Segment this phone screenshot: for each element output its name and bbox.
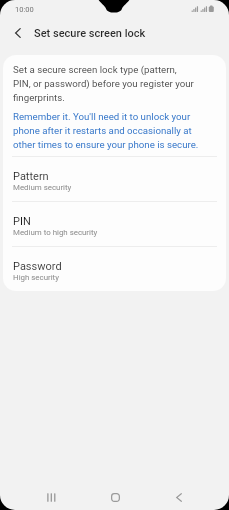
staticText: 10:00 bbox=[15, 5, 34, 14]
button[interactable]: Pattern bbox=[3, 157, 226, 201]
staticText: PIN bbox=[13, 215, 31, 228]
button[interactable]: Recent apps bbox=[37, 483, 65, 510]
staticText: Set secure screen lock bbox=[34, 27, 146, 40]
button[interactable]: Home bbox=[101, 483, 129, 510]
staticText: Pattern bbox=[13, 170, 49, 183]
button[interactable]: Back bbox=[165, 483, 193, 510]
staticText: Remember it. You'll need it to unlock yo… bbox=[13, 111, 199, 150]
staticText: Medium to high security bbox=[13, 228, 98, 237]
staticText: Set a secure screen lock type (pattern, … bbox=[13, 64, 194, 103]
button[interactable]: Navigate up bbox=[7, 22, 28, 43]
staticText: High security bbox=[13, 273, 59, 282]
button[interactable]: Password bbox=[3, 247, 226, 291]
button[interactable]: PIN bbox=[3, 202, 226, 246]
staticText: Password bbox=[13, 260, 62, 273]
staticText: Medium security bbox=[13, 183, 72, 192]
